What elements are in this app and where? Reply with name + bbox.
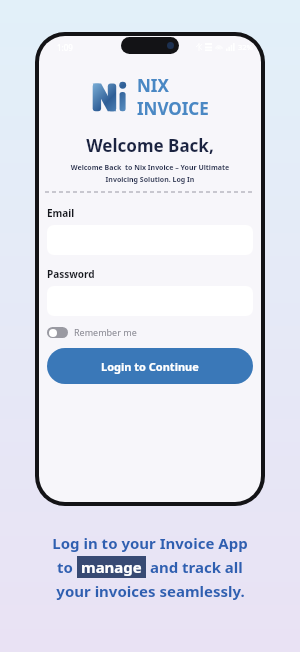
staticText: 32% <box>238 42 253 52</box>
staticText: Password <box>47 267 95 281</box>
staticText: INVOICE <box>137 97 209 120</box>
staticText: Email <box>47 206 75 220</box>
staticText: Welcome Back to Nix Invoice – Your Ultim… <box>49 163 251 184</box>
staticText: NIX <box>137 74 169 97</box>
staticText: to <box>57 557 77 577</box>
staticText: Welcome Back, <box>39 134 261 157</box>
staticText: Remember me <box>74 326 137 338</box>
staticText: Log in to your Invoice App <box>52 533 248 553</box>
staticText: your invoices seamlessly. <box>56 581 245 601</box>
button[interactable]: Login to Continue <box>47 348 253 384</box>
staticText: and track all <box>146 557 243 577</box>
staticText: 1:09 <box>57 42 73 53</box>
staticText: Login to Continue <box>101 359 199 374</box>
staticText: manage <box>81 557 142 577</box>
button[interactable]: Remember me <box>47 325 137 339</box>
